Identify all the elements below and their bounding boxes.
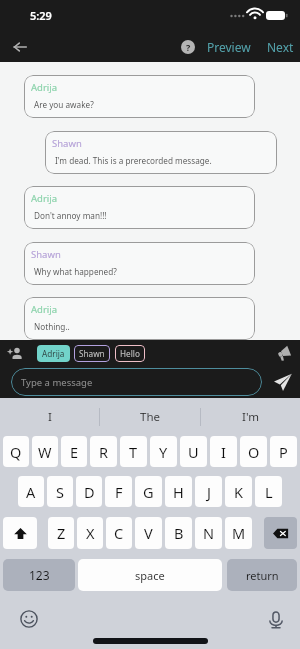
button[interactable]: X	[77, 517, 103, 549]
button[interactable]: W	[32, 436, 58, 467]
staticText: Are you awake?	[34, 99, 94, 110]
button[interactable]: Add person	[8, 346, 23, 361]
staticText: P	[279, 442, 288, 462]
button[interactable]: Hello	[115, 345, 145, 362]
button[interactable]: Adrija	[37, 345, 70, 362]
staticText: Nothing..	[34, 321, 70, 332]
staticText: N	[203, 523, 215, 543]
staticText: H	[173, 482, 184, 502]
button[interactable]: Dictate	[265, 609, 286, 630]
staticText: O	[248, 442, 260, 462]
button[interactable]: Adrija	[24, 186, 255, 229]
staticText: Don't annoy man!!!	[34, 210, 107, 221]
button[interactable]: Announce	[276, 346, 291, 361]
staticText: The	[140, 409, 160, 425]
staticText: I'm	[242, 409, 259, 425]
button[interactable]: N	[195, 517, 222, 549]
staticText: Preview	[207, 39, 251, 55]
button[interactable]: M	[225, 517, 252, 549]
button[interactable]: E	[61, 436, 87, 467]
staticText: I'm dead. This is a prerecorded message.	[55, 155, 212, 166]
button[interactable]: The	[100, 398, 200, 436]
button[interactable]: return	[227, 559, 297, 591]
button[interactable]: Help	[178, 37, 198, 57]
button[interactable]: H	[165, 476, 192, 507]
staticText: S	[56, 482, 64, 502]
button[interactable]: Shawn	[74, 345, 110, 362]
button[interactable]: I	[0, 398, 99, 436]
staticText: Adrija	[31, 192, 58, 205]
staticText: Z	[57, 523, 66, 543]
staticText: U	[188, 442, 199, 462]
staticText: I	[48, 409, 52, 425]
button[interactable]: Y	[150, 436, 177, 467]
button[interactable]: G	[135, 476, 162, 507]
button[interactable]: V	[135, 517, 162, 549]
button[interactable]: Emoji	[19, 609, 38, 628]
button[interactable]: J	[195, 476, 222, 507]
staticText: E	[70, 442, 79, 462]
staticText: B	[174, 523, 184, 543]
staticText: 123	[29, 567, 50, 583]
staticText: I	[221, 442, 226, 462]
button[interactable]: B	[165, 517, 192, 549]
button[interactable]: Preview	[202, 34, 256, 60]
staticText: return	[246, 568, 279, 583]
button[interactable]: K	[225, 476, 252, 507]
staticText: 5:29	[30, 8, 52, 23]
staticText: R	[99, 442, 109, 462]
button[interactable]: P	[270, 436, 297, 467]
staticText: Type a message	[21, 376, 93, 389]
staticText: space	[135, 568, 165, 583]
staticText: Adrija	[31, 303, 58, 316]
staticText: Shawn	[79, 348, 105, 359]
staticText: Q	[10, 442, 22, 462]
button[interactable]: C	[106, 517, 132, 549]
staticText: Next	[267, 39, 294, 55]
button[interactable]: O	[240, 436, 267, 467]
button[interactable]: Q	[3, 436, 29, 467]
button[interactable]: Send	[272, 371, 294, 393]
button[interactable]: Z	[48, 517, 74, 549]
staticText: M	[232, 523, 246, 543]
button[interactable]: 123	[3, 559, 75, 591]
staticText: Shawn	[52, 137, 82, 150]
button[interactable]: I	[210, 436, 237, 467]
staticText: L	[265, 482, 273, 502]
staticText: G	[143, 482, 154, 502]
staticText: Hello	[120, 348, 140, 359]
button[interactable]: Type a message	[11, 368, 262, 396]
staticText: V	[144, 523, 153, 543]
staticText: F	[115, 482, 123, 502]
button[interactable]: I'm	[201, 398, 300, 436]
button[interactable]: Shawn	[24, 242, 255, 285]
staticText: J	[207, 482, 211, 502]
staticText: A	[26, 482, 36, 502]
button[interactable]	[264, 517, 297, 549]
button[interactable]: Adrija	[24, 75, 255, 118]
button[interactable]: Next	[262, 34, 299, 60]
button[interactable]: Adrija	[24, 297, 255, 340]
staticText: Adrija	[42, 348, 65, 359]
button[interactable]: D	[76, 476, 102, 507]
button[interactable]: R	[90, 436, 117, 467]
staticText: Y	[159, 442, 168, 462]
button[interactable]	[3, 517, 37, 549]
staticText: ?	[186, 41, 191, 53]
button[interactable]: Back	[7, 34, 33, 60]
button[interactable]: U	[180, 436, 207, 467]
button[interactable]: space	[78, 559, 222, 591]
staticText: X	[86, 523, 95, 543]
staticText: T	[129, 442, 138, 462]
button[interactable]: S	[47, 476, 73, 507]
button[interactable]: A	[18, 476, 44, 507]
staticText: Adrija	[31, 81, 58, 94]
staticText: K	[234, 482, 243, 502]
button[interactable]: T	[120, 436, 147, 467]
button[interactable]: L	[255, 476, 282, 507]
button[interactable]: F	[105, 476, 132, 507]
button[interactable]: Shawn	[45, 131, 277, 174]
staticText: D	[84, 482, 95, 502]
staticText: W	[38, 442, 52, 462]
staticText: Shawn	[31, 248, 61, 261]
